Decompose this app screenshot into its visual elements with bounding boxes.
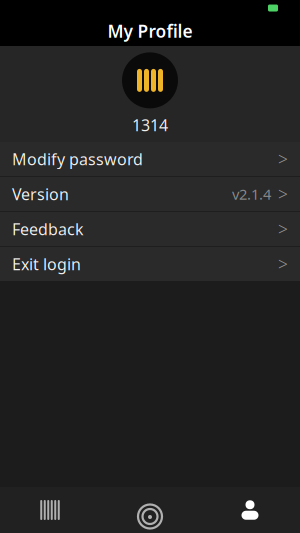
button[interactable]: Scan — [0, 487, 100, 533]
staticText: > — [278, 147, 288, 170]
staticText: My Profile — [107, 19, 192, 42]
button[interactable]: My Profile — [200, 487, 300, 533]
staticText: > — [278, 217, 288, 240]
button[interactable]: Feedback — [0, 212, 300, 246]
staticText: Exit login — [12, 253, 81, 275]
button[interactable]: Network — [100, 487, 200, 533]
button[interactable]: Modify password — [0, 142, 300, 176]
staticText: Feedback — [12, 218, 84, 240]
staticText: Modify password — [12, 148, 143, 170]
staticText: Version — [12, 183, 69, 205]
staticText: > — [278, 252, 288, 275]
button[interactable]: Exit login — [0, 247, 300, 281]
staticText: 1314 — [132, 114, 168, 136]
button[interactable]: Version — [0, 177, 300, 211]
staticText: > — [278, 182, 288, 205]
staticText: v2.1.4 — [232, 184, 271, 204]
